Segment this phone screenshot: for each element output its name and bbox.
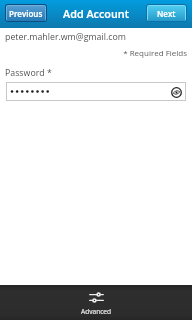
staticText: Previous — [9, 8, 43, 19]
staticText: Password * — [5, 67, 52, 79]
button[interactable]: Next — [146, 4, 187, 22]
button[interactable]: Show password — [170, 86, 182, 98]
button[interactable]: Advanced — [65, 290, 128, 319]
button[interactable]: Show password — [6, 82, 186, 101]
staticText: * Required Fields — [0, 47, 187, 58]
staticText: peter.mahler.wm@gmail.com — [5, 31, 126, 43]
staticText: Add Account — [0, 6, 192, 21]
button[interactable]: Previous — [5, 4, 47, 22]
staticText: Next — [157, 8, 176, 19]
staticText: Advanced — [81, 307, 112, 316]
